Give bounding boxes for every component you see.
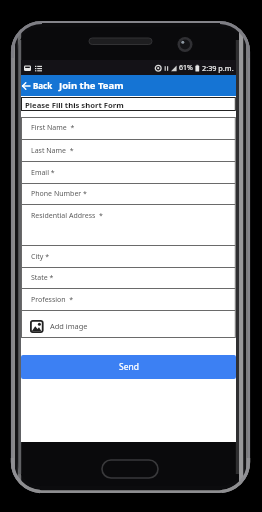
staticText: Send: [119, 361, 139, 373]
staticText: 61%: [179, 63, 193, 73]
staticText: Join the Team: [59, 79, 124, 92]
button[interactable]: Back: [21, 75, 53, 96]
staticText: Residential Address *: [31, 211, 103, 221]
staticText: First Name *: [31, 123, 75, 133]
button[interactable]: Phone Number *: [21, 183, 236, 205]
button[interactable]: State *: [21, 267, 236, 289]
staticText: State *: [31, 273, 54, 283]
staticText: Last Name *: [31, 146, 74, 156]
button[interactable]: First Name *: [21, 117, 236, 140]
button[interactable]: Email *: [21, 162, 236, 184]
staticText: Phone Number *: [31, 189, 87, 199]
staticText: Please Fill this short Form: [25, 100, 124, 110]
staticText: Add image: [50, 321, 88, 331]
button[interactable]: Profession *: [21, 289, 236, 311]
button[interactable]: [21, 310, 236, 338]
button[interactable]: City *: [21, 246, 236, 268]
staticText: Profession *: [31, 295, 74, 305]
staticText: City *: [31, 252, 50, 262]
staticText: Email *: [31, 168, 55, 178]
button[interactable]: Send: [21, 355, 236, 379]
staticText: 2:39 p.m.: [202, 63, 234, 73]
button[interactable]: Residential Address *: [21, 205, 236, 246]
staticText: Back: [33, 80, 53, 91]
button[interactable]: Last Name *: [21, 140, 236, 162]
